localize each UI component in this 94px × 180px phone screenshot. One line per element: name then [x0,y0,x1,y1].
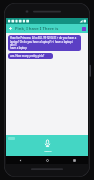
button[interactable]: Pink, I have I There is [15,24,79,33]
staticText: ure. How many pretty girls? [10,54,45,58]
button[interactable]: Voice input [39,138,56,153]
button[interactable] [8,137,15,140]
button[interactable]: More options [79,24,88,33]
staticText: How far Princess A ka B.E. 99 52 04 D > … [10,36,77,40]
button[interactable]: How far Princess A ka B.E. 99 52 04 D > … [8,35,81,51]
button[interactable]: ure. How many pretty girls? [8,53,53,59]
button[interactable]: Home [34,156,61,164]
staticText: have a laptop [10,46,27,50]
button[interactable]: Recent apps [61,156,88,164]
button[interactable]: Back [6,156,34,164]
staticText: SPEAK [44,149,52,152]
staticText: Pink, I have I There is [15,26,59,32]
button[interactable]: Back [6,24,15,33]
staticText: laptop? Or do you have a laptop? > i hav… [10,40,79,46]
